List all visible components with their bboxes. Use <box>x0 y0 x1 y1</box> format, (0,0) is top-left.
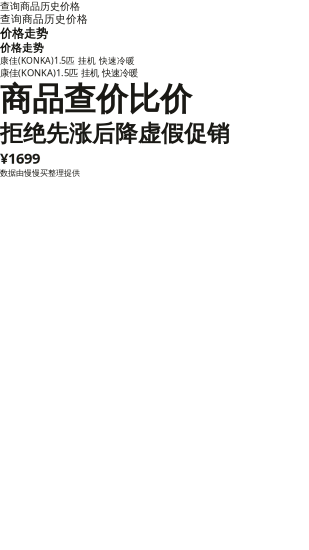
staticText: 价格走势 <box>0 41 44 55</box>
staticText: 拒绝先涨后降虚假促销 <box>0 119 230 148</box>
staticText: 查询商品历史价格 <box>0 0 80 13</box>
staticText: 康佳(KONKA)1.5匹 挂机 快速冷暖 <box>0 55 135 66</box>
staticText: 查询商品历史价格 <box>0 13 88 26</box>
staticText: 数据由慢慢买整理提供 <box>0 168 80 178</box>
staticText: 商品查价比价 <box>0 79 192 119</box>
staticText: ¥1699 <box>0 148 40 168</box>
staticText: 康佳(KONKA)1.5匹 挂机 快速冷暖 <box>0 66 138 79</box>
staticText: 价格走势 <box>0 26 48 41</box>
